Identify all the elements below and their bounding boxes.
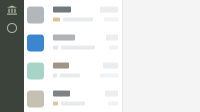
button[interactable]: [24, 28, 122, 56]
button[interactable]: Library: [0, 1, 24, 19]
button[interactable]: [24, 56, 122, 84]
button[interactable]: [24, 0, 122, 28]
button[interactable]: Account: [0, 19, 24, 37]
button[interactable]: [24, 84, 122, 112]
